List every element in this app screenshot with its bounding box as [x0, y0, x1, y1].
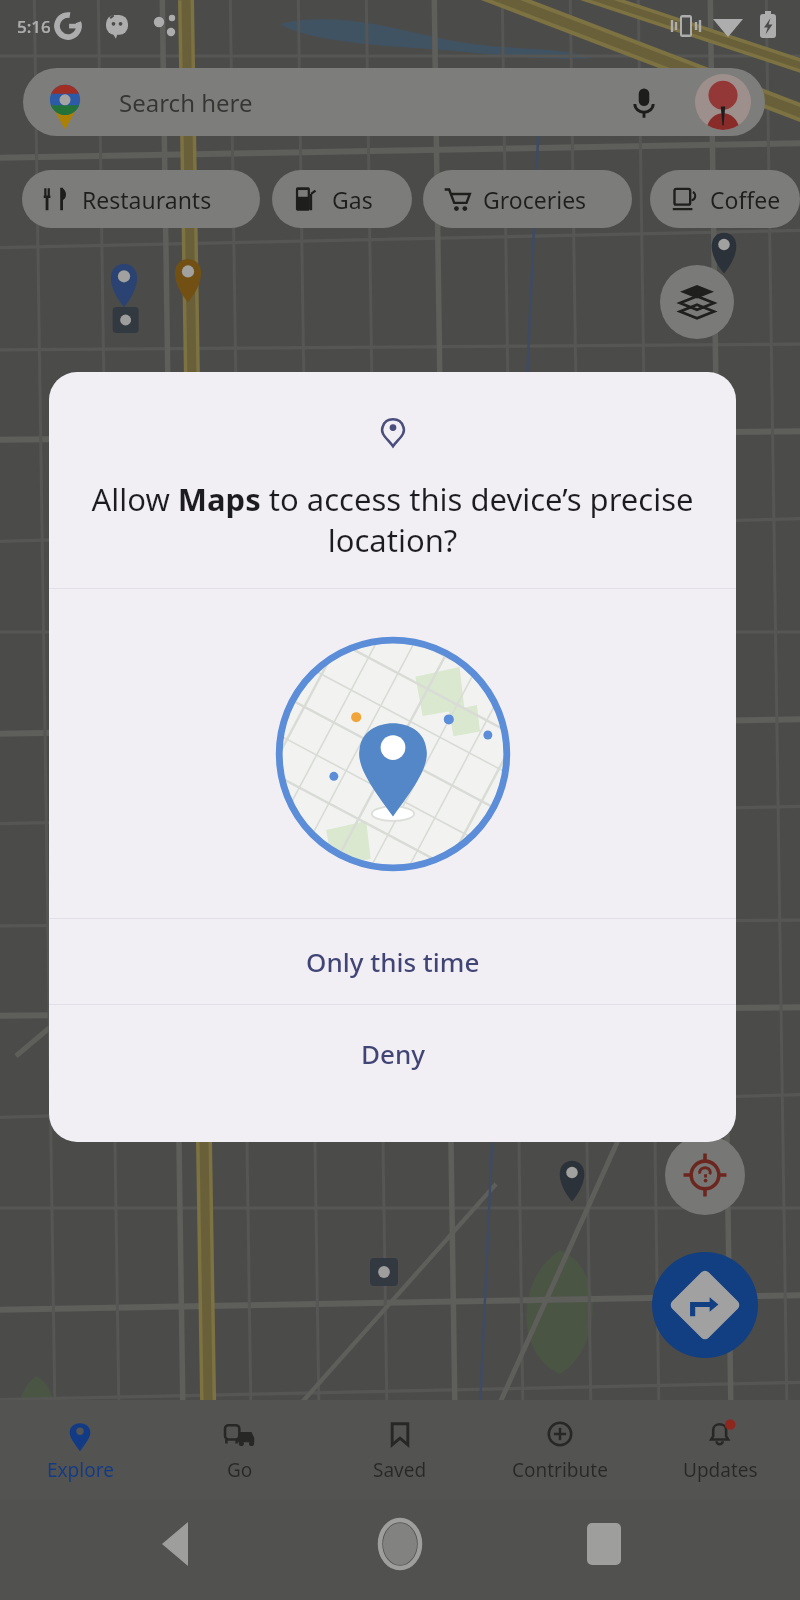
staticText: Saved [373, 1457, 427, 1483]
staticText: Deny [361, 1036, 425, 1071]
staticText: Updates [683, 1457, 758, 1483]
button[interactable]: Go [160, 1400, 320, 1500]
button[interactable]: Only this time [49, 919, 736, 1004]
button[interactable]: Restaurants [22, 170, 260, 228]
staticText: Contribute [512, 1457, 608, 1483]
staticText: Go [227, 1457, 253, 1483]
button[interactable]: My location [665, 1135, 745, 1215]
button[interactable]: Map layers [660, 265, 734, 339]
staticText: Allow Maps to access this device’s preci… [83, 478, 702, 561]
button[interactable]: Account [695, 74, 751, 130]
staticText: Restaurants [82, 184, 212, 215]
staticText: Groceries [483, 184, 587, 215]
button[interactable]: Updates [640, 1400, 800, 1500]
button[interactable]: Search here [23, 68, 765, 136]
button[interactable]: Directions [652, 1252, 758, 1358]
button[interactable]: Contribute [480, 1400, 640, 1500]
staticText: Search here [119, 86, 253, 119]
staticText: Gas [332, 184, 373, 215]
staticText: Explore [47, 1457, 114, 1483]
staticText: Coffee [710, 184, 781, 215]
button[interactable]: Coffee [650, 170, 800, 228]
button[interactable]: Explore [0, 1400, 160, 1500]
button[interactable]: Groceries [423, 170, 632, 228]
button[interactable]: Deny [49, 1005, 736, 1101]
button[interactable]: Gas [272, 170, 412, 228]
staticText: Only this time [306, 944, 480, 979]
button[interactable]: Saved [320, 1400, 480, 1500]
staticText: 5:16 [17, 15, 51, 38]
